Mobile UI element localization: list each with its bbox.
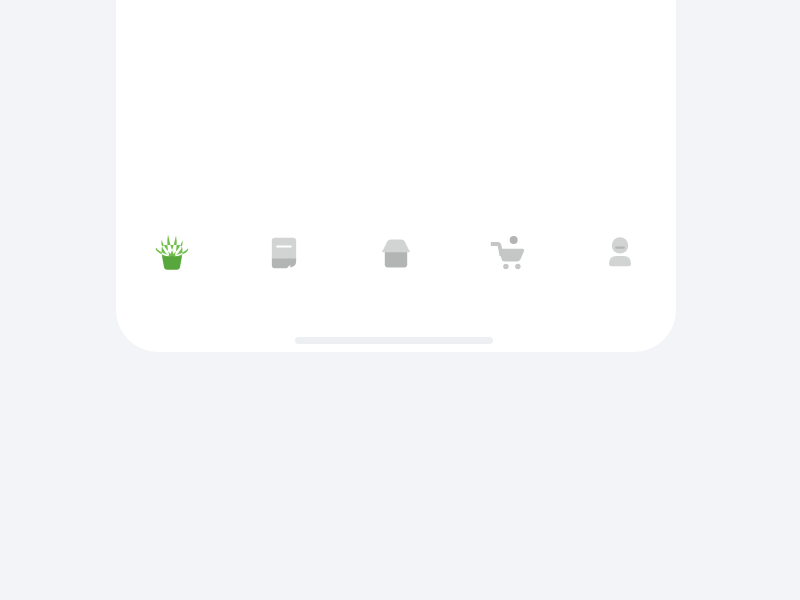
button[interactable]: Plants	[116, 218, 228, 288]
button[interactable]: Journal	[228, 218, 340, 288]
button[interactable]: Profile	[564, 218, 676, 288]
button[interactable]: Shop	[340, 218, 452, 288]
button[interactable]: Cart	[452, 218, 564, 288]
